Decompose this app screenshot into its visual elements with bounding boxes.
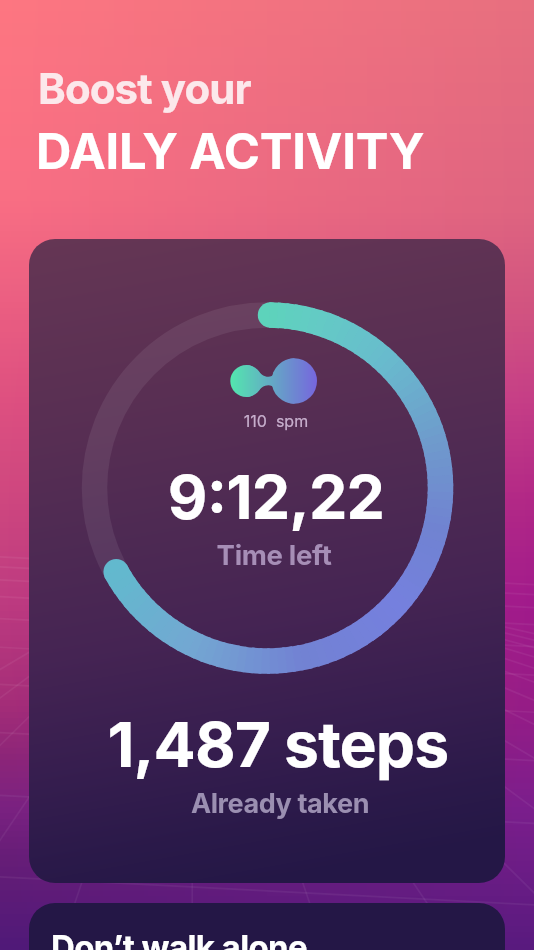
button[interactable]: Don’t walk alone (29, 903, 505, 950)
staticText: Time left (36, 538, 505, 571)
button[interactable]: Cadence (29, 239, 505, 883)
other: Cadence (230, 358, 318, 404)
staticText: Boost your (38, 63, 251, 114)
staticText: DAILY ACTIVITY (36, 122, 425, 181)
staticText: 9:12,22 (38, 460, 505, 534)
staticText: 110 spm (38, 411, 505, 430)
staticText: Don’t walk alone (51, 927, 308, 950)
staticText: 1,487 steps (40, 706, 505, 782)
staticText: Already taken (42, 787, 505, 820)
